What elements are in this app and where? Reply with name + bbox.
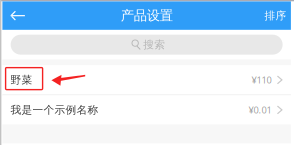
staticText: 排序 <box>264 9 286 22</box>
button[interactable]: 我是一个示例名称 <box>2 95 291 124</box>
staticText: 我是一个示例名称 <box>10 103 98 116</box>
staticText: ¥110 <box>251 74 271 86</box>
staticText: ¥0.01 <box>248 104 271 116</box>
staticText: 野菜 <box>10 73 32 86</box>
button[interactable]: 排序 <box>248 1 291 30</box>
button[interactable]: 野菜 <box>2 65 291 94</box>
staticText: 产品设置 <box>121 7 173 24</box>
staticText: 搜索 <box>143 38 165 51</box>
button[interactable]: 搜索 <box>11 35 283 55</box>
button[interactable]: Back <box>2 3 41 28</box>
